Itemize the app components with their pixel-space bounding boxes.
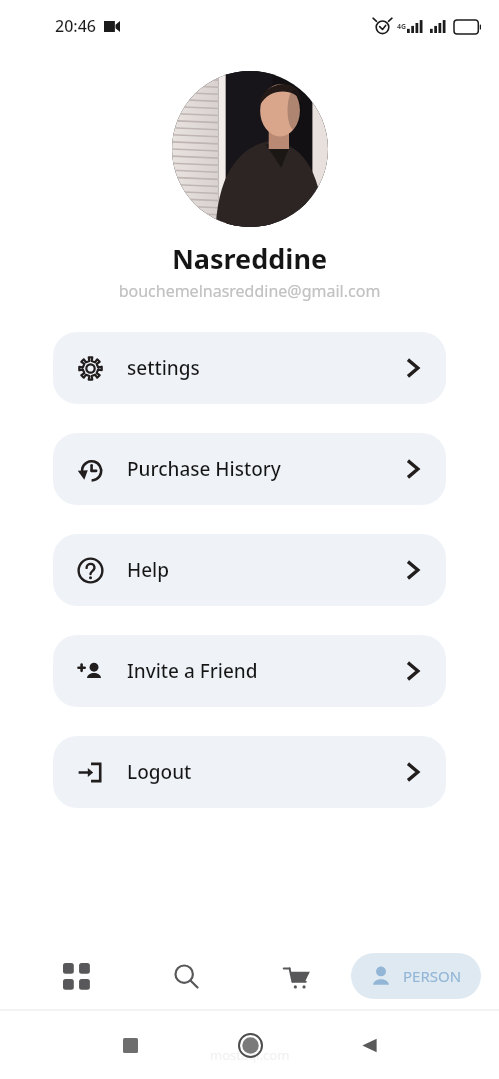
button[interactable]: PERSON (351, 953, 481, 999)
button[interactable]: Search (131, 941, 241, 1011)
staticText: PERSON (403, 966, 462, 986)
button[interactable]: Invite a Friend (53, 635, 446, 707)
staticText: 4G (397, 22, 407, 32)
button[interactable]: Cart (241, 941, 351, 1011)
staticText: Help (127, 557, 170, 583)
staticText: Nasreddine (0, 240, 499, 277)
staticText: settings (127, 355, 200, 381)
staticText: mostaql.com (210, 1046, 290, 1064)
button[interactable]: Purchase History (53, 433, 446, 505)
button[interactable]: settings (53, 332, 446, 404)
staticText: 20:46 (55, 15, 96, 37)
staticText: Logout (127, 759, 192, 785)
staticText: Invite a Friend (127, 658, 258, 684)
button[interactable]: Help (53, 534, 446, 606)
button[interactable]: Dashboard (22, 941, 131, 1011)
button[interactable]: Home (230, 1025, 270, 1065)
button[interactable]: Recents (110, 1025, 150, 1065)
staticText: bouchemelnasreddine@gmail.com (0, 280, 499, 302)
button[interactable]: Back (349, 1025, 389, 1065)
staticText: Purchase History (127, 456, 281, 482)
button[interactable]: Logout (53, 736, 446, 808)
